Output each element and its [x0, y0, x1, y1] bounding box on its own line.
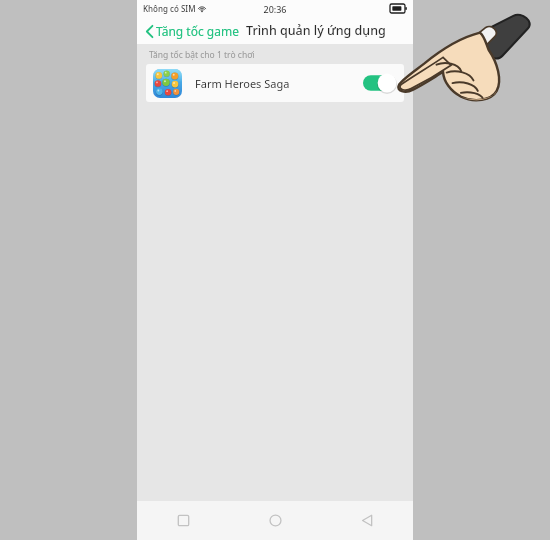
button[interactable]: Toggle game boost: [363, 73, 397, 93]
button[interactable]: Back: [321, 501, 413, 540]
staticText: Tăng tốc game: [156, 23, 239, 39]
button[interactable]: Back: [146, 23, 239, 39]
button[interactable]: Recent apps: [137, 501, 229, 540]
staticText: Farm Heroes Saga: [195, 76, 290, 91]
staticText: Tăng tốc bật cho 1 trò chơi: [149, 49, 255, 61]
button[interactable]: Farm Heroes Saga: [146, 64, 404, 102]
staticText: Trình quản lý ứng dụng: [246, 22, 386, 39]
button[interactable]: Home: [229, 501, 321, 540]
staticText: 20:36: [263, 3, 287, 15]
staticText: Không có SIM: [143, 3, 196, 14]
other: Back: [146, 25, 153, 38]
